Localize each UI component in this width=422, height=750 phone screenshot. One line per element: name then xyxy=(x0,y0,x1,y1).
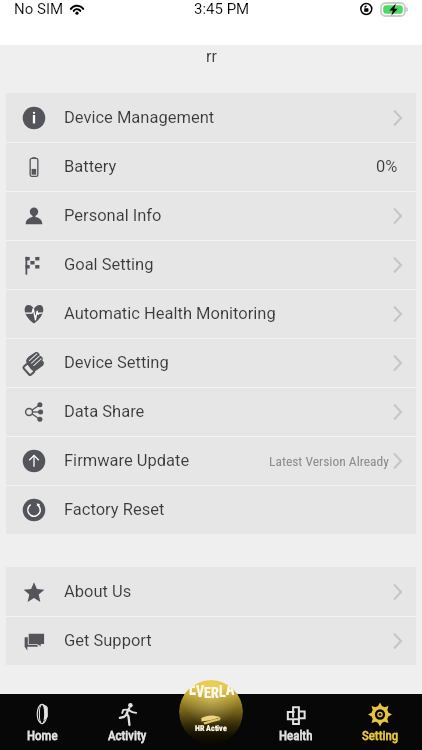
other: Rotation lock xyxy=(360,2,374,16)
button[interactable]: Everlast xyxy=(179,680,243,744)
button[interactable]: Setting xyxy=(338,694,422,750)
button[interactable]: About Us xyxy=(6,567,416,616)
button[interactable]: Personal Info xyxy=(6,191,416,240)
button[interactable]: Factory Reset xyxy=(6,485,416,534)
button[interactable]: Data Share xyxy=(6,387,416,436)
staticText: Get Support xyxy=(64,631,152,650)
staticText: Activity xyxy=(108,728,147,743)
button[interactable]: Activity xyxy=(85,694,170,750)
staticText: Health xyxy=(279,728,313,743)
button[interactable]: Health xyxy=(254,694,338,750)
button[interactable]: Get Support xyxy=(6,616,416,665)
staticText: Latest Version Already xyxy=(269,453,389,469)
button[interactable]: Device Setting xyxy=(6,338,416,387)
button[interactable]: Battery xyxy=(6,142,416,191)
staticText: No SIM xyxy=(14,0,64,18)
staticText: Battery xyxy=(64,157,117,176)
staticText: Data Share xyxy=(64,402,145,421)
staticText: Goal Setting xyxy=(64,255,154,274)
staticText: rr xyxy=(206,47,217,66)
button[interactable]: Goal Setting xyxy=(6,240,416,289)
button[interactable]: Device Management xyxy=(6,93,416,142)
button[interactable]: Home xyxy=(0,694,85,750)
button[interactable]: Firmware Update xyxy=(6,436,416,485)
staticText: 0% xyxy=(376,157,398,176)
staticText: Automatic Health Monitoring xyxy=(64,304,276,323)
staticText: Personal Info xyxy=(64,206,162,225)
staticText: Setting xyxy=(362,728,399,743)
staticText: Factory Reset xyxy=(64,500,165,519)
staticText: About Us xyxy=(64,582,132,601)
staticText: Home xyxy=(27,728,58,743)
staticText: Firmware Update xyxy=(64,451,190,470)
button[interactable]: Automatic Health Monitoring xyxy=(6,289,416,338)
staticText: Device Management xyxy=(64,108,215,127)
staticText: 3:45 PM xyxy=(194,0,250,18)
staticText: Device Setting xyxy=(64,353,169,372)
